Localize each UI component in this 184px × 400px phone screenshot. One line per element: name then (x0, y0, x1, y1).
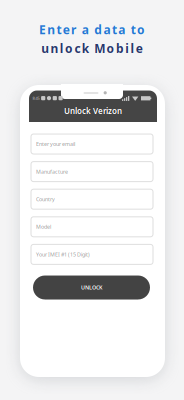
button[interactable]: Manufacture (31, 162, 153, 182)
button[interactable]: Country (31, 189, 153, 209)
button[interactable]: Enter your email (31, 134, 153, 154)
button[interactable]: UNLOCK (33, 275, 150, 299)
staticText: unlock Mobile (41, 40, 143, 56)
staticText: Enter a data to (39, 22, 145, 37)
staticText: Model (36, 223, 51, 230)
staticText: 8:45 (32, 95, 39, 101)
staticText: Your IMEI #1 (15 Digit) (36, 251, 90, 258)
staticText: Unlock Verizon (64, 106, 122, 116)
button[interactable]: Model (31, 217, 153, 237)
button[interactable]: Your IMEI #1 (15 Digit) (31, 244, 153, 264)
staticText: Manufacture (36, 168, 68, 175)
staticText: Enter your email (36, 140, 75, 148)
staticText: UNLOCK (81, 284, 102, 291)
staticText: Country (36, 196, 55, 203)
